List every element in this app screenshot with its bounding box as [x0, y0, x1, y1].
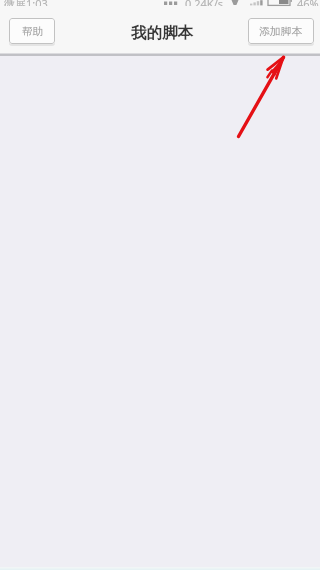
staticText: 46% [297, 0, 319, 6]
staticText: 0.24K/s [185, 0, 223, 6]
staticText: 微展1:03 [4, 0, 48, 6]
staticText: 帮助 [22, 25, 43, 38]
staticText: 我的脚本 [131, 23, 193, 43]
button[interactable]: 帮助 [9, 18, 55, 44]
button[interactable]: 添加脚本 [248, 18, 314, 44]
staticText: 添加脚本 [259, 25, 303, 39]
